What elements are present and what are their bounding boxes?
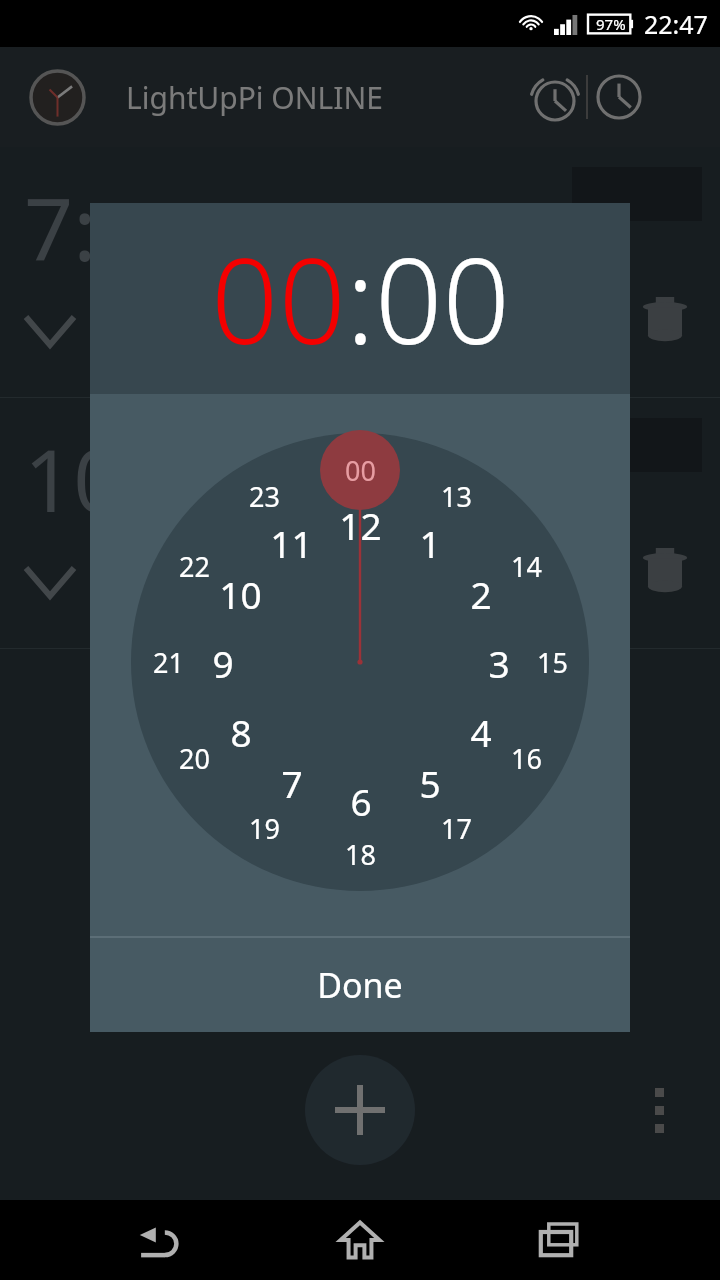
staticText: 15 [537, 644, 568, 681]
staticText: 00 [345, 452, 376, 489]
staticText: 11 [270, 518, 313, 568]
button[interactable]: 00 [323, 450, 398, 490]
staticText: 97% [596, 14, 626, 34]
button[interactable]: More options [632, 1083, 686, 1137]
staticText: 6 [350, 776, 372, 826]
button[interactable]: 10 [189, 566, 292, 621]
button[interactable]: Delete alarm [634, 540, 696, 602]
staticText: 22 [179, 548, 210, 585]
staticText: Done [317, 962, 403, 1008]
button[interactable]: 15 [515, 642, 590, 682]
staticText: : [346, 218, 375, 379]
staticText: 16 [511, 740, 542, 777]
staticText: 17 [441, 810, 472, 847]
staticText: LightUpPi ONLINE [126, 77, 383, 118]
staticText: 12 [339, 500, 382, 550]
staticText: 3 [488, 638, 510, 688]
button[interactable]: Recents [520, 1200, 600, 1280]
staticText: 9 [212, 638, 234, 688]
staticText: 00 [375, 218, 510, 379]
staticText: 21 [153, 644, 184, 681]
staticText: 8 [230, 707, 252, 757]
button[interactable]: 5 [404, 755, 455, 810]
button[interactable]: Home [320, 1200, 400, 1280]
staticText: 22:47 [644, 7, 708, 41]
staticText: 19 [249, 810, 280, 847]
button[interactable]: 2 [455, 566, 506, 621]
staticText: 4 [470, 707, 492, 757]
button[interactable]: 10 [0, 398, 720, 648]
button[interactable]: 13 [419, 476, 494, 516]
button[interactable]: Back [120, 1200, 200, 1280]
button[interactable]: 6 [335, 773, 386, 828]
staticText: 14 [511, 548, 542, 585]
button[interactable]: 8 [215, 704, 266, 759]
button[interactable]: 3 [473, 635, 524, 690]
button[interactable]: 16 [489, 738, 564, 778]
button[interactable]: 18 [323, 834, 398, 874]
button[interactable]: Alarms [524, 66, 586, 128]
staticText: 5 [419, 758, 441, 808]
staticText: 00 [211, 218, 346, 379]
button[interactable]: 17 [419, 808, 494, 848]
button[interactable]: 00 [375, 218, 510, 379]
button[interactable]: 20 [157, 738, 232, 778]
staticText: 7: [24, 169, 97, 286]
staticText: 7 [281, 758, 303, 808]
button[interactable]: Done [90, 938, 630, 1032]
button[interactable]: 12 [309, 497, 412, 552]
button[interactable]: 22 [157, 546, 232, 586]
staticText: 23 [249, 478, 280, 515]
staticText: 10 [24, 420, 123, 537]
button[interactable]: Clock [588, 66, 650, 128]
button[interactable]: Delete alarm [634, 289, 696, 351]
staticText: 20 [179, 740, 210, 777]
button[interactable]: Add alarm [305, 1055, 415, 1165]
staticText: 18 [345, 836, 376, 873]
staticText: 10 [219, 569, 262, 619]
staticText: 13 [441, 478, 472, 515]
staticText: 1 [419, 518, 441, 568]
button[interactable]: 4 [455, 704, 506, 759]
button[interactable]: 00 [211, 218, 346, 379]
button[interactable]: 21 [131, 642, 206, 682]
button[interactable]: 11 [240, 515, 343, 570]
button[interactable]: 19 [227, 808, 302, 848]
button[interactable]: 14 [489, 546, 564, 586]
button[interactable]: 7: [0, 147, 720, 397]
button[interactable]: App icon [29, 69, 86, 126]
button[interactable]: 23 [227, 476, 302, 516]
button[interactable]: 7 [266, 755, 317, 810]
button[interactable]: 9 [197, 635, 248, 690]
staticText: 2 [470, 569, 492, 619]
button[interactable]: 1 [404, 515, 455, 570]
